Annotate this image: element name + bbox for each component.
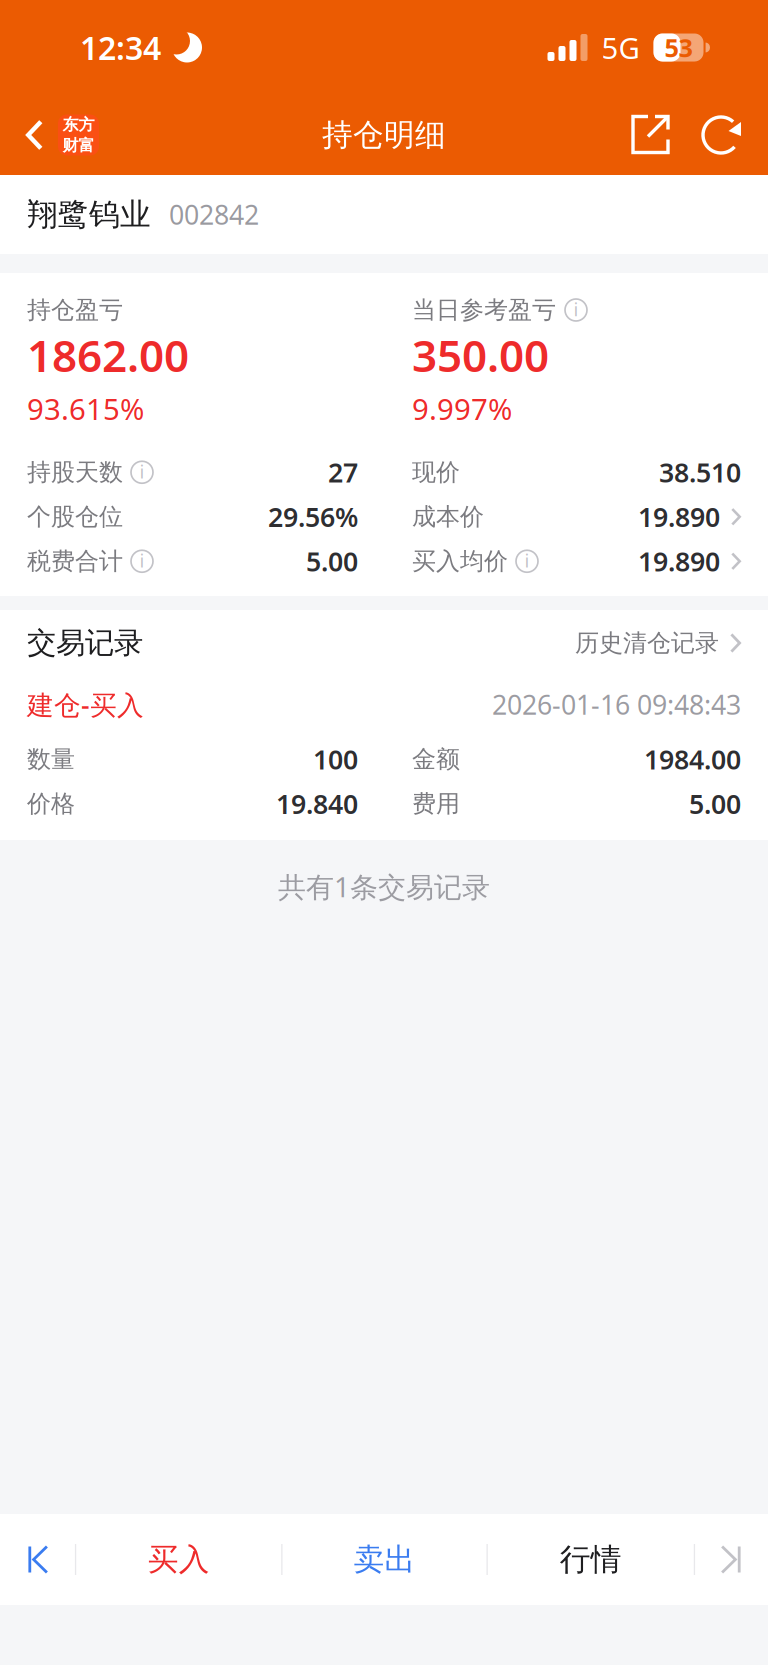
- staticText: 持仓明细: [322, 116, 446, 154]
- staticText: 100: [313, 741, 358, 777]
- staticText: 19.890: [638, 543, 720, 579]
- staticText: 买入: [148, 1541, 210, 1578]
- button[interactable]: Next stock: [695, 1514, 767, 1605]
- staticText: 5.00: [689, 786, 741, 821]
- staticText: 买入均价: [412, 546, 508, 576]
- staticText: 1984.00: [644, 741, 741, 777]
- button[interactable]: 买入: [76, 1514, 281, 1605]
- staticText: 费用: [412, 789, 460, 818]
- staticText: 数量: [27, 744, 75, 774]
- button[interactable]: Back to East Money: [0, 95, 113, 175]
- button[interactable]: 行情: [488, 1514, 694, 1605]
- staticText: i: [524, 548, 529, 573]
- staticText: 金额: [412, 744, 460, 774]
- staticText: 价格: [27, 789, 75, 818]
- staticText: 个股仓位: [27, 502, 123, 531]
- button[interactable]: Share: [616, 95, 686, 175]
- staticText: 历史清仓记录: [575, 628, 719, 658]
- staticText: 现价: [412, 457, 460, 487]
- staticText: 19.890: [638, 499, 720, 534]
- staticText: 交易记录: [27, 625, 143, 661]
- staticText: 卖出: [353, 1541, 415, 1578]
- button[interactable]: First stock: [1, 1514, 75, 1605]
- staticText: 建仓-买入: [27, 687, 144, 722]
- staticText: 行情: [560, 1541, 622, 1578]
- staticText: 共有1条交易记录: [278, 868, 490, 905]
- staticText: 1862.00: [27, 326, 189, 384]
- button[interactable]: Refresh: [686, 95, 756, 175]
- staticText: 12:34: [80, 26, 161, 69]
- staticText: 成本价: [412, 502, 484, 531]
- staticText: 29.56%: [268, 499, 358, 534]
- staticText: 9.997%: [412, 389, 512, 428]
- staticText: 19.840: [276, 786, 358, 821]
- staticText: 002842: [169, 197, 259, 232]
- staticText: 财富: [62, 135, 94, 155]
- staticText: 2026-01-16 09:48:43: [492, 687, 741, 722]
- staticText: i: [139, 459, 144, 484]
- staticText: 93.615%: [27, 389, 144, 428]
- staticText: 5.00: [306, 543, 358, 579]
- staticText: 翔鹭钨业: [27, 196, 151, 233]
- staticText: 53: [664, 31, 692, 64]
- staticText: 持仓盈亏: [27, 295, 123, 325]
- staticText: 当日参考盈亏: [412, 295, 556, 325]
- button[interactable]: 历史清仓记录: [575, 628, 741, 658]
- button[interactable]: 卖出: [282, 1514, 486, 1605]
- staticText: 税费合计: [27, 546, 123, 576]
- staticText: 5G: [601, 28, 639, 67]
- staticText: i: [573, 297, 578, 321]
- staticText: 持股天数: [27, 457, 123, 487]
- staticText: i: [139, 548, 144, 573]
- staticText: 27: [328, 454, 358, 490]
- staticText: 东方: [62, 115, 94, 134]
- staticText: 350.00: [412, 326, 549, 384]
- staticText: 38.510: [659, 454, 741, 490]
